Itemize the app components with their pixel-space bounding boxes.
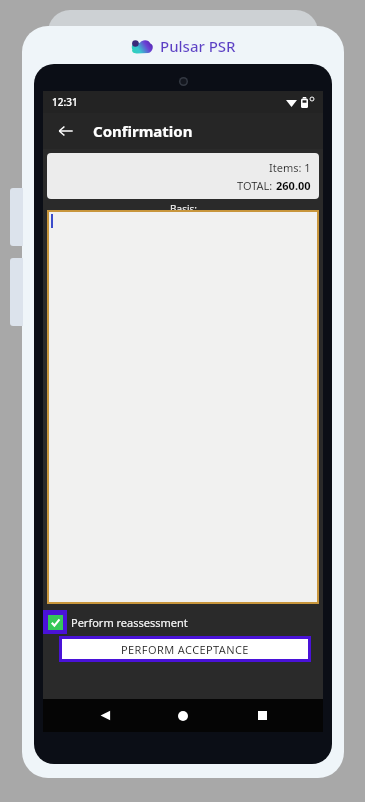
staticText: TOTAL: xyxy=(237,178,276,193)
button[interactable]: Back xyxy=(88,699,122,732)
button[interactable] xyxy=(47,210,319,604)
staticText: Confirmation xyxy=(93,121,193,141)
staticText: Perform reassessment xyxy=(71,615,188,630)
staticText: Pulsar PSR xyxy=(160,36,236,56)
button[interactable]: Recent apps xyxy=(245,699,279,732)
staticText: PERFORM ACCEPTANCE xyxy=(121,642,249,657)
staticText: Basis: xyxy=(170,202,197,211)
button[interactable]: Items: 1 xyxy=(47,153,319,199)
staticText: Items: 1 xyxy=(269,160,311,175)
staticText: 12:31 xyxy=(52,95,78,109)
button[interactable]: Back xyxy=(51,116,81,146)
button[interactable]: Home xyxy=(166,699,200,732)
staticText: 260.00 xyxy=(276,178,311,193)
button[interactable]: Perform reassessment xyxy=(43,610,323,634)
button[interactable]: PERFORM ACCEPTANCE xyxy=(62,639,308,659)
